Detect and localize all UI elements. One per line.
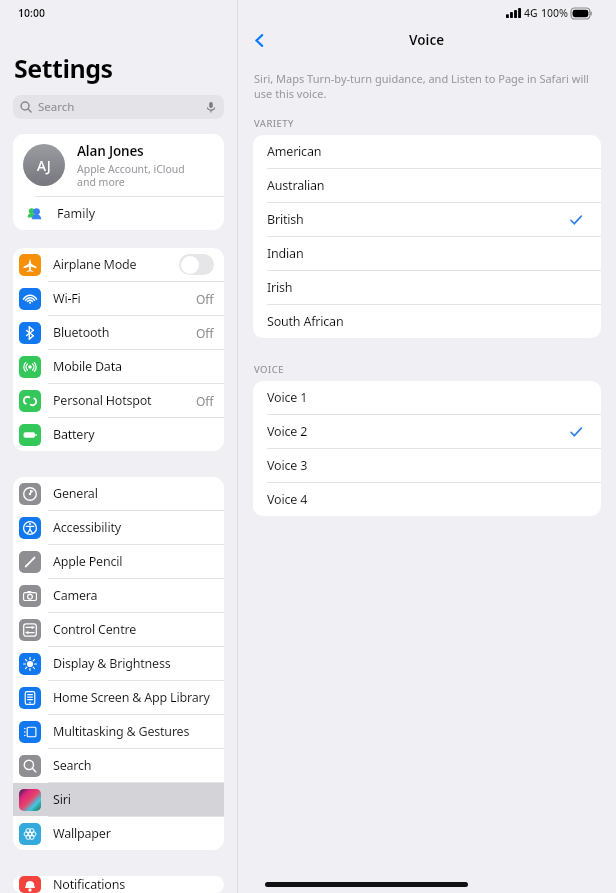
button[interactable]: Voice 1 [253, 381, 601, 414]
staticText: 10:00 [18, 6, 45, 20]
staticText: Airplane Mode [53, 256, 137, 273]
button[interactable]: Accessibility [13, 511, 224, 544]
button[interactable]: Search [13, 749, 224, 782]
staticText: Indian [267, 245, 304, 262]
button[interactable]: South African [253, 305, 601, 338]
button[interactable]: Airplane Mode toggle [179, 254, 214, 275]
staticText: Siri, Maps Turn-by-turn guidance, and Li… [254, 71, 594, 101]
staticText: Settings [14, 51, 113, 85]
button[interactable]: Control Centre [13, 613, 224, 646]
button[interactable]: Back [246, 27, 272, 53]
staticText: Irish [267, 279, 293, 296]
staticText: Wi-Fi [53, 290, 81, 307]
staticText: Voice [409, 31, 445, 49]
staticText: American [267, 143, 322, 160]
button[interactable]: Display & Brightness [13, 647, 224, 680]
staticText: AJ [37, 156, 51, 175]
staticText: Voice 2 [267, 423, 308, 440]
staticText: Personal Hotspot [53, 392, 152, 409]
button[interactable]: Mobile Data [13, 350, 224, 383]
staticText: Home Screen & App Library [53, 689, 210, 706]
staticText: Apple Account, iCloud and more [77, 162, 185, 189]
staticText: British [267, 211, 304, 228]
button[interactable]: Multitasking & Gestures [13, 715, 224, 748]
staticText: Accessibility [53, 519, 121, 536]
staticText: Display & Brightness [53, 655, 171, 672]
staticText: Control Centre [53, 621, 137, 638]
staticText: 100% [541, 6, 568, 20]
button[interactable]: Wallpaper [13, 817, 224, 850]
button[interactable]: Voice 2 [253, 415, 601, 448]
staticText: Family [57, 205, 96, 222]
button[interactable]: American [253, 135, 601, 168]
staticText: Apple Pencil [53, 553, 123, 570]
staticText: Off [196, 291, 214, 307]
staticText: South African [267, 313, 344, 330]
staticText: Voice 4 [267, 491, 308, 508]
button[interactable]: General [13, 477, 224, 510]
staticText: Australian [267, 177, 325, 194]
staticText: Camera [53, 587, 98, 604]
staticText: Off [196, 393, 214, 409]
button[interactable]: Airplane Mode [13, 248, 224, 281]
staticText: Battery [53, 426, 95, 443]
staticText: Off [196, 325, 214, 341]
button[interactable]: Personal Hotspot [13, 384, 224, 417]
button[interactable]: Voice 3 [253, 449, 601, 482]
staticText: VOICE [254, 363, 285, 376]
button[interactable]: Wi-Fi [13, 282, 224, 315]
button[interactable]: Camera [13, 579, 224, 612]
button[interactable]: Family [13, 197, 224, 230]
button[interactable]: British [253, 203, 601, 236]
button[interactable]: Apple Pencil [13, 545, 224, 578]
staticText: Search [38, 99, 75, 115]
staticText: Notifications [53, 876, 125, 893]
staticText: Multitasking & Gestures [53, 723, 190, 740]
button[interactable]: Bluetooth [13, 316, 224, 349]
button[interactable]: Search [13, 95, 224, 119]
staticText: VARIETY [254, 117, 294, 130]
staticText: 4G [524, 6, 538, 20]
button[interactable]: Australian [253, 169, 601, 202]
button[interactable]: Voice 4 [253, 483, 601, 516]
staticText: Bluetooth [53, 324, 110, 341]
button[interactable]: Siri [13, 783, 224, 816]
staticText: General [53, 485, 98, 502]
staticText: Wallpaper [53, 825, 111, 842]
staticText: Alan Jones [77, 142, 144, 160]
staticText: Voice 1 [267, 389, 308, 406]
staticText: Mobile Data [53, 358, 122, 375]
staticText: Voice 3 [267, 457, 308, 474]
button[interactable]: Indian [253, 237, 601, 270]
button[interactable]: Battery [13, 418, 224, 451]
staticText: Siri [53, 791, 71, 808]
button[interactable]: Home Screen & App Library [13, 681, 224, 714]
button[interactable]: Notifications [13, 876, 224, 893]
staticText: Search [53, 757, 92, 774]
button[interactable]: Irish [253, 271, 601, 304]
button[interactable]: AJ [13, 134, 224, 196]
